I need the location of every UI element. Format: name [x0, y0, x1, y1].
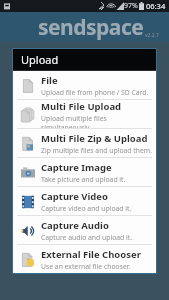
button[interactable]: Capture Audio — [13, 216, 156, 244]
button[interactable]: Multi File Zip & Upload — [13, 129, 156, 157]
staticText: v2.2.7 — [145, 32, 159, 39]
staticText: Upload — [21, 52, 59, 67]
staticText: Capture audio and upload it. — [41, 233, 133, 242]
staticText: 97% — [124, 1, 138, 11]
button[interactable]: Capture Video — [13, 187, 156, 215]
staticText: Use an external file chooser. — [41, 262, 131, 271]
staticText: Zip multiple files and upload them. — [41, 146, 152, 155]
staticText: 06:34 — [146, 1, 166, 11]
staticText: File — [41, 74, 58, 87]
staticText: Take picture and upload it. — [41, 175, 126, 184]
staticText: Capture Image — [41, 161, 112, 174]
staticText: Upload file from phone / SD Card. — [41, 88, 149, 97]
staticText: External File Chooser — [41, 248, 141, 261]
staticText: Upload multiple files simultaneously. — [41, 114, 152, 128]
staticText: Capture Video — [41, 190, 108, 203]
staticText: Capture video and upload it. — [41, 204, 132, 213]
button[interactable]: Multi File Upload — [13, 100, 156, 128]
staticText: Multi File Zip & Upload — [41, 132, 148, 145]
staticText: sendspace — [38, 13, 144, 42]
staticText: Multi File Upload — [41, 100, 122, 113]
staticText: Capture Audio — [41, 219, 109, 232]
button[interactable]: External File Chooser — [13, 245, 156, 273]
button[interactable]: File — [13, 71, 156, 99]
button[interactable]: Capture Image — [13, 158, 156, 186]
